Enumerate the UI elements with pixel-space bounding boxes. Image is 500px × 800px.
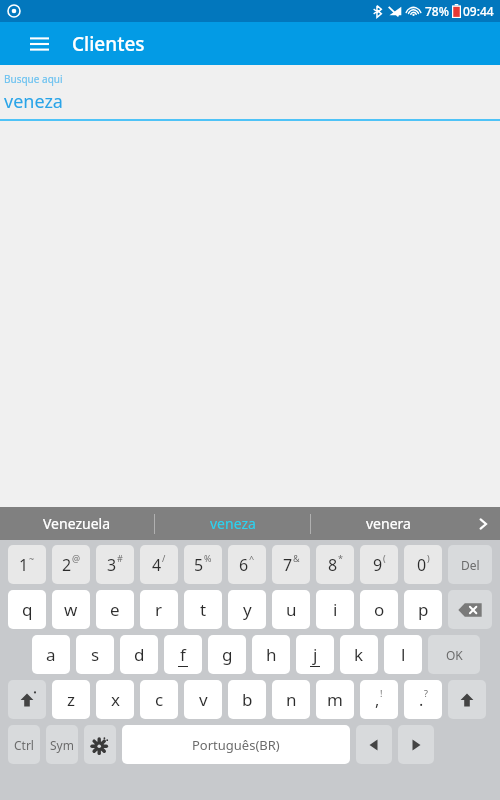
button[interactable]: Venezuela — [0, 507, 154, 540]
button[interactable]: 7 — [272, 545, 310, 584]
button[interactable]: Shift — [448, 680, 486, 719]
button[interactable]: Space — [122, 725, 350, 764]
button[interactable]: 8 — [316, 545, 354, 584]
staticText: Português(BR) — [192, 736, 280, 754]
staticText: ! — [380, 687, 383, 699]
staticText: 2 — [62, 554, 72, 576]
button[interactable]: Busque aqui — [0, 65, 500, 121]
button[interactable]: 4 — [140, 545, 178, 584]
button[interactable]: i — [316, 590, 354, 629]
staticText: x — [111, 688, 120, 711]
staticText: OK — [446, 647, 463, 663]
button[interactable]: 0 — [404, 545, 442, 584]
button[interactable]: , — [360, 680, 398, 719]
button[interactable]: g — [208, 635, 246, 674]
button[interactable]: Move cursor left — [356, 725, 392, 764]
staticText: 4 — [152, 554, 162, 576]
button[interactable]: e — [96, 590, 134, 629]
staticText: b — [242, 688, 253, 711]
button[interactable]: More suggestions — [466, 507, 500, 540]
staticText: 09:44 — [463, 3, 494, 19]
button[interactable]: c — [140, 680, 178, 719]
button[interactable]: z — [52, 680, 90, 719]
staticText: , — [375, 689, 380, 711]
staticText: & — [293, 552, 300, 564]
staticText: o — [374, 598, 385, 621]
button[interactable]: Open navigation menu — [22, 27, 56, 61]
button[interactable]: m — [316, 680, 354, 719]
button[interactable]: 1 — [8, 545, 46, 584]
button[interactable]: k — [340, 635, 378, 674]
button[interactable]: Delete — [448, 545, 492, 584]
staticText: Del — [461, 557, 480, 573]
button[interactable]: o — [360, 590, 398, 629]
staticText: @ — [72, 552, 81, 564]
button[interactable]: 6 — [228, 545, 266, 584]
staticText: 9 — [373, 554, 383, 576]
button[interactable]: p — [404, 590, 442, 629]
button[interactable]: y — [228, 590, 266, 629]
staticText: 6 — [239, 554, 249, 576]
button[interactable]: j — [296, 635, 334, 674]
staticText: c — [155, 688, 164, 711]
button[interactable]: v — [184, 680, 222, 719]
button[interactable]: 9 — [360, 545, 398, 584]
staticText: venera — [366, 514, 411, 533]
button[interactable]: b — [228, 680, 266, 719]
button[interactable]: t — [184, 590, 222, 629]
button[interactable]: d — [120, 635, 158, 674]
staticText: y — [243, 598, 252, 621]
staticText: h — [266, 643, 277, 666]
staticText: q — [22, 598, 33, 621]
button[interactable]: Shift — [8, 680, 46, 719]
staticText: e — [110, 598, 120, 621]
button[interactable]: l — [384, 635, 422, 674]
button[interactable]: q — [8, 590, 46, 629]
staticText: veneza — [4, 89, 63, 114]
button[interactable]: venera — [311, 507, 466, 540]
button[interactable]: Backspace — [448, 590, 492, 629]
button[interactable]: r — [140, 590, 178, 629]
button[interactable]: 3 — [96, 545, 134, 584]
staticText: ^ — [249, 552, 255, 564]
button[interactable]: OK — [428, 635, 480, 674]
staticText: f — [180, 643, 186, 666]
staticText: ~ — [29, 552, 35, 564]
button[interactable]: 5 — [184, 545, 222, 584]
staticText: 5 — [194, 554, 204, 576]
button[interactable]: Move cursor right — [398, 725, 434, 764]
button[interactable]: x — [96, 680, 134, 719]
staticText: 3 — [107, 554, 117, 576]
staticText: 78% — [425, 3, 449, 19]
button[interactable]: 2 — [52, 545, 90, 584]
staticText: 8 — [328, 554, 338, 576]
button[interactable]: h — [252, 635, 290, 674]
staticText: j — [313, 643, 318, 666]
button[interactable]: . — [404, 680, 442, 719]
button[interactable]: a — [32, 635, 70, 674]
staticText: k — [354, 643, 364, 666]
button[interactable]: s — [76, 635, 114, 674]
button[interactable]: u — [272, 590, 310, 629]
staticText: 0 — [417, 554, 427, 576]
staticText: Clientes — [72, 31, 145, 57]
staticText: Sym — [50, 737, 74, 753]
button[interactable]: Control — [8, 725, 40, 764]
staticText: g — [222, 643, 233, 666]
staticText: z — [67, 688, 75, 711]
staticText: t — [200, 598, 207, 621]
staticText: ) — [427, 552, 430, 564]
staticText: v — [199, 688, 208, 711]
button[interactable]: Symbols — [46, 725, 78, 764]
staticText: / — [162, 552, 166, 564]
button[interactable]: w — [52, 590, 90, 629]
button[interactable]: Keyboard settings — [84, 725, 116, 764]
staticText: u — [286, 598, 297, 621]
staticText: 1 — [19, 554, 29, 576]
staticText: m — [327, 688, 343, 711]
staticText: w — [64, 598, 78, 621]
staticText: ? — [424, 687, 428, 699]
button[interactable]: veneza — [155, 507, 310, 540]
button[interactable]: f — [164, 635, 202, 674]
button[interactable]: n — [272, 680, 310, 719]
